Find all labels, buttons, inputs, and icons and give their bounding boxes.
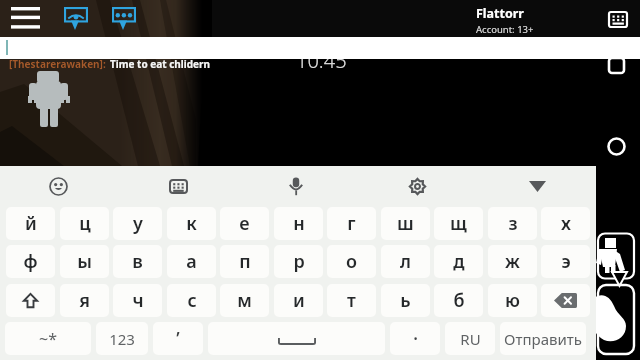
- button[interactable]: ж: [488, 245, 537, 278]
- staticText: д: [453, 249, 465, 274]
- button[interactable]: ф: [6, 245, 55, 278]
- button[interactable]: [0, 37, 640, 59]
- button[interactable]: о: [327, 245, 376, 278]
- button[interactable]: Space: [208, 322, 385, 355]
- staticText: б: [453, 288, 465, 313]
- staticText: щ: [450, 211, 467, 236]
- button[interactable]: у: [113, 207, 162, 240]
- staticText: а: [186, 249, 197, 274]
- staticText: Time to eat chlidern: [110, 57, 211, 71]
- staticText: я: [79, 288, 90, 313]
- staticText: RU: [460, 329, 481, 349]
- staticText: о: [346, 249, 357, 274]
- button[interactable]: х: [541, 207, 590, 240]
- staticText: 123: [109, 329, 135, 349]
- button[interactable]: и: [274, 284, 323, 317]
- staticText: л: [400, 249, 411, 274]
- button[interactable]: а: [167, 245, 216, 278]
- button[interactable]: Jump: [592, 284, 638, 356]
- staticText: ц: [79, 211, 91, 236]
- button[interactable]: й: [6, 207, 55, 240]
- staticText: ~*: [39, 328, 57, 350]
- button[interactable]: ’: [153, 322, 203, 355]
- button[interactable]: э: [541, 245, 590, 278]
- button[interactable]: н: [274, 207, 323, 240]
- button[interactable]: RU: [445, 322, 495, 355]
- button[interactable]: с: [167, 284, 216, 317]
- button[interactable]: к: [167, 207, 216, 240]
- staticText: з: [508, 211, 518, 236]
- button[interactable]: Voice input: [274, 166, 318, 206]
- staticText: Account: 13+: [476, 23, 534, 36]
- button[interactable]: р: [274, 245, 323, 278]
- button[interactable]: ~*: [5, 322, 91, 355]
- button[interactable]: Shift: [6, 284, 55, 317]
- button[interactable]: г: [327, 207, 376, 240]
- button[interactable]: б: [434, 284, 483, 317]
- staticText: с: [187, 288, 197, 313]
- button[interactable]: т: [327, 284, 376, 317]
- button[interactable]: Hide keyboard: [515, 166, 559, 206]
- button[interactable]: Keyboard layouts: [156, 166, 200, 206]
- button[interactable]: е: [220, 207, 269, 240]
- staticText: к: [186, 211, 197, 236]
- button[interactable]: в: [113, 245, 162, 278]
- button[interactable]: щ: [434, 207, 483, 240]
- staticText: ы: [77, 249, 92, 274]
- button[interactable]: Menu: [0, 0, 50, 37]
- button[interactable]: я: [60, 284, 109, 317]
- staticText: ф: [23, 249, 38, 274]
- button[interactable]: д: [434, 245, 483, 278]
- staticText: в: [132, 249, 143, 274]
- staticText: е: [239, 211, 250, 236]
- button[interactable]: Character: [592, 231, 636, 281]
- staticText: ь: [400, 288, 411, 313]
- staticText: г: [347, 211, 356, 236]
- staticText: п: [239, 249, 251, 274]
- button[interactable]: ю: [488, 284, 537, 317]
- staticText: у: [133, 211, 143, 236]
- staticText: х: [561, 211, 571, 236]
- button[interactable]: Chat: [104, 2, 144, 35]
- button[interactable]: л: [381, 245, 430, 278]
- button[interactable]: ·: [390, 322, 440, 355]
- staticText: р: [293, 249, 305, 274]
- staticText: м: [237, 288, 252, 313]
- staticText: т: [347, 288, 356, 313]
- button[interactable]: ь: [381, 284, 430, 317]
- button[interactable]: Emoji: [36, 166, 80, 206]
- staticText: й: [25, 211, 37, 236]
- button[interactable]: Backspace: [541, 284, 590, 317]
- button[interactable]: Keyboard: [600, 4, 636, 34]
- staticText: ч: [132, 288, 144, 313]
- button[interactable]: Flattorr: [476, 5, 534, 36]
- staticText: ·: [413, 327, 418, 350]
- staticText: [Thestarerawaken]:: [9, 57, 106, 71]
- staticText: Flattorr: [476, 5, 524, 22]
- button[interactable]: м: [220, 284, 269, 317]
- button[interactable]: п: [220, 245, 269, 278]
- button[interactable]: ы: [60, 245, 109, 278]
- button[interactable]: Recents: [608, 57, 625, 74]
- staticText: ю: [505, 288, 520, 313]
- staticText: Отправить: [504, 329, 582, 349]
- button[interactable]: ц: [60, 207, 109, 240]
- button[interactable]: Home: [607, 137, 626, 156]
- staticText: ш: [397, 211, 414, 236]
- button[interactable]: Toggle camera: [55, 2, 95, 35]
- staticText: ж: [505, 249, 520, 274]
- button[interactable]: 123: [96, 322, 148, 355]
- button[interactable]: ш: [381, 207, 430, 240]
- staticText: н: [293, 211, 305, 236]
- staticText: 10:45: [296, 47, 347, 74]
- staticText: и: [293, 288, 305, 313]
- button[interactable]: Отправить: [500, 322, 586, 355]
- button[interactable]: Settings: [395, 166, 439, 206]
- staticText: э: [561, 249, 571, 274]
- staticText: ’: [176, 327, 180, 350]
- button[interactable]: ч: [113, 284, 162, 317]
- button[interactable]: з: [488, 207, 537, 240]
